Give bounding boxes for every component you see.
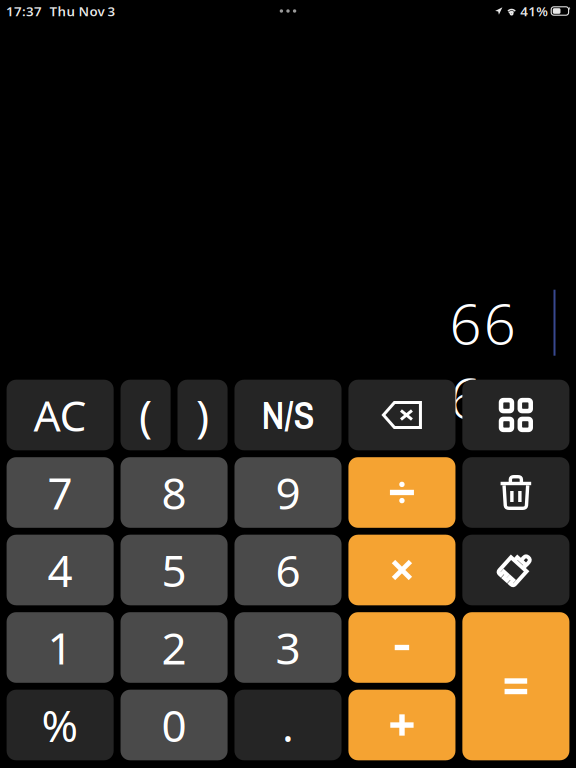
button[interactable]: AC — [7, 380, 114, 450]
staticText: 666 — [450, 285, 550, 360]
button[interactable]: ( — [120, 380, 171, 450]
staticText: 9 — [275, 463, 300, 522]
staticText: ) — [196, 386, 209, 444]
staticText: 2 — [162, 618, 187, 677]
staticText: 4 — [48, 541, 73, 599]
button[interactable]: 4 — [7, 535, 114, 605]
button[interactable]: Delete — [348, 380, 455, 450]
staticText: N/S — [261, 389, 314, 441]
button[interactable]: 6 — [234, 535, 341, 605]
button[interactable]: 1 — [7, 612, 114, 683]
button[interactable]: Minus — [348, 612, 455, 683]
staticText: 6 — [275, 541, 300, 599]
staticText: 17:37 — [6, 2, 42, 20]
button[interactable]: 9 — [234, 457, 341, 528]
staticText: AC — [34, 387, 87, 443]
staticText: 7 — [48, 463, 73, 522]
staticText: ( — [139, 386, 152, 444]
button[interactable]: Clear history — [462, 457, 569, 528]
button[interactable]: 3 — [234, 612, 341, 683]
button[interactable]: 0 — [120, 690, 227, 760]
staticText: 0 — [162, 696, 187, 754]
staticText: 8 — [162, 463, 187, 522]
button[interactable]: ) — [177, 380, 228, 450]
button[interactable]: . — [234, 690, 341, 760]
staticText: 5 — [162, 541, 187, 599]
button[interactable]: 2 — [120, 612, 227, 683]
staticText: Thu Nov 3 — [49, 2, 115, 20]
staticText: % — [42, 696, 79, 754]
staticText: 1 — [48, 618, 73, 677]
staticText: 3 — [275, 618, 300, 677]
button[interactable]: Plus — [348, 690, 455, 760]
staticText: 41% — [520, 2, 548, 20]
button[interactable]: Multiply — [348, 535, 455, 605]
button[interactable]: 7 — [7, 457, 114, 528]
button[interactable]: 5 — [120, 535, 227, 605]
button[interactable]: Divide — [348, 457, 455, 528]
button[interactable]: Equals — [462, 612, 569, 760]
staticText: . — [282, 696, 294, 754]
button[interactable]: % — [7, 690, 114, 760]
button[interactable]: Theme — [462, 535, 569, 605]
button[interactable]: Keypad layout — [462, 380, 569, 450]
button[interactable]: N/S — [234, 380, 341, 450]
button[interactable]: 8 — [120, 457, 227, 528]
